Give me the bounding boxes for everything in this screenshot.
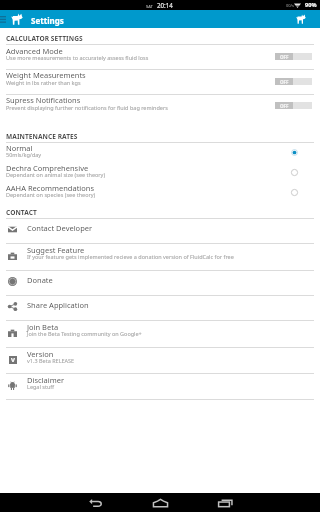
button[interactable]: Normal <box>0 143 320 163</box>
button[interactable]: Suggest Feature <box>0 244 320 270</box>
staticText: CONTACT <box>6 208 37 215</box>
button[interactable]: Contact Developer <box>0 219 320 243</box>
staticText: Share Application <box>27 300 89 310</box>
staticText: OFF <box>280 103 289 109</box>
staticText: Disclaimer <box>27 375 65 385</box>
staticText: v1.3 Beta RELEASE <box>27 357 75 364</box>
button[interactable]: Share Application <box>0 296 320 320</box>
staticText: Join Beta <box>27 322 59 332</box>
staticText: 90% <box>305 1 317 9</box>
button[interactable]: AAHA Recommendations <box>0 183 320 203</box>
staticText: AAHA Recommendations <box>6 183 95 193</box>
staticText: OFF <box>280 79 289 85</box>
staticText: Dependant on animal size (see theory) <box>6 171 106 178</box>
button[interactable]: Advanced Mode <box>0 45 320 69</box>
staticText: V <box>11 356 15 364</box>
button[interactable]: Recent apps <box>209 493 242 512</box>
staticText: Normal <box>6 143 33 153</box>
button[interactable]: Dechra Comprehensive <box>0 163 320 183</box>
staticText: Supress Notifications <box>6 95 81 105</box>
staticText: MAINTENANCE RATES <box>6 132 78 139</box>
button[interactable]: Home <box>144 493 177 512</box>
staticText: Contact Developer <box>27 223 93 233</box>
button[interactable]: Disclaimer <box>0 374 320 399</box>
staticText: Weight in lbs rather than kgs <box>6 79 81 86</box>
button[interactable]: Weight Measurements <box>0 70 320 94</box>
staticText: Prevent displaying further notifications… <box>6 104 168 111</box>
button[interactable]: Fluid calculator <box>291 10 311 28</box>
staticText: If your feature gets implemented recieve… <box>27 253 234 260</box>
staticText: Suggest Feature <box>27 245 85 255</box>
staticText: Settings <box>31 15 64 26</box>
staticText: Weight Measurements <box>6 70 86 80</box>
staticText: Donate <box>27 275 53 285</box>
staticText: Join the Beta Testing community on Googl… <box>27 330 142 337</box>
staticText: CALCULATOR SETTINGS <box>6 34 83 41</box>
staticText: Advanced Mode <box>6 46 63 56</box>
staticText: 20:14 <box>157 1 173 9</box>
staticText: Dependant on species (see theory) <box>6 191 96 198</box>
button[interactable]: Back <box>79 493 112 512</box>
staticText: 00/s <box>286 3 294 8</box>
button[interactable]: Navigation drawer <box>0 10 11 28</box>
staticText: SAT <box>146 4 153 9</box>
staticText: OFF <box>280 54 289 60</box>
staticText: Use more measurements to accurately asse… <box>6 54 149 61</box>
staticText: 50mls/kg/day <box>6 151 42 158</box>
staticText: Dechra Comprehensive <box>6 163 89 173</box>
button[interactable]: V <box>0 348 320 373</box>
staticText: Legal stuff <box>27 383 55 390</box>
button[interactable]: Join Beta <box>0 321 320 347</box>
staticText: Version <box>27 349 54 359</box>
button[interactable]: Supress Notifications <box>0 95 320 120</box>
button[interactable]: Donate <box>0 271 320 295</box>
